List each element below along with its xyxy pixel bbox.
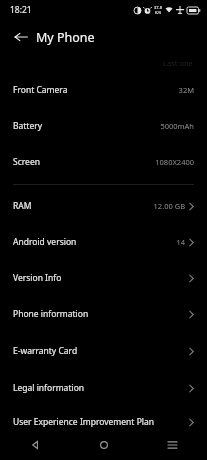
staticText: Phone information (13, 308, 89, 320)
button[interactable]: Legal information (0, 380, 207, 396)
button[interactable]: Version Info (0, 270, 207, 286)
button[interactable]: Home (69, 430, 138, 460)
staticText: 12.00 GB (153, 201, 185, 211)
button[interactable]: Battery (0, 118, 207, 134)
staticText: My Phone (36, 29, 95, 46)
button[interactable]: Screen (0, 154, 207, 170)
staticText: Version Info (13, 272, 62, 284)
staticText: Battery (13, 120, 43, 132)
staticText: Front Camera (13, 84, 68, 96)
staticText: Android version (13, 236, 77, 248)
staticText: 5000mAh (160, 121, 194, 131)
staticText: 32M (178, 85, 194, 95)
staticText: RAM (13, 200, 32, 212)
staticText: 1080X2400 (155, 157, 194, 167)
button[interactable]: Back (0, 430, 69, 460)
button[interactable]: E-warranty Card (0, 343, 207, 359)
button[interactable]: Android version (0, 234, 207, 250)
staticText: User Experience Improvement Plan (13, 416, 154, 428)
staticText: Screen (13, 156, 40, 168)
staticText: 14 (176, 237, 185, 247)
staticText: K/S (155, 10, 162, 15)
staticText: Legal information (13, 382, 85, 394)
button[interactable]: Recent apps (138, 430, 207, 460)
button[interactable]: Back (7, 23, 35, 51)
staticText: Last one (163, 58, 193, 68)
staticText: 18:21 (10, 4, 32, 16)
button[interactable]: RAM (0, 198, 207, 214)
button[interactable]: Phone information (0, 306, 207, 322)
button[interactable]: Front Camera (0, 82, 207, 98)
staticText: E-warranty Card (13, 345, 78, 357)
staticText: 37.8 (154, 5, 162, 10)
button[interactable]: User Experience Improvement Plan (0, 414, 207, 430)
